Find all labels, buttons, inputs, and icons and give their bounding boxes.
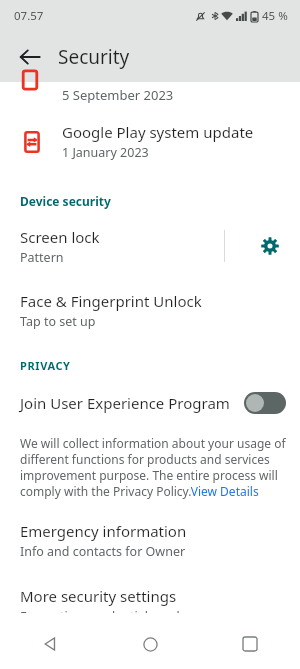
button[interactable]: Emergency information: [0, 517, 300, 566]
staticText: 45 %: [262, 8, 288, 24]
button[interactable]: Face & Fingerprint Unlock: [0, 287, 300, 336]
staticText: 1 January 2023: [62, 144, 149, 161]
staticText: 07.57: [14, 8, 44, 24]
button[interactable]: Home: [100, 619, 200, 669]
staticText: Emergency information: [20, 521, 187, 541]
button[interactable]: Join User Experience Program toggle: [244, 392, 286, 414]
staticText: Device security: [20, 193, 111, 209]
button[interactable]: Back: [0, 619, 100, 669]
button[interactable]: Recent apps: [200, 619, 300, 669]
button[interactable]: Screen lock settings: [248, 224, 292, 268]
staticText: Tap to set up: [20, 313, 96, 330]
staticText: We will collect information about your u…: [20, 435, 286, 499]
staticText: Info and contacts for Owner: [20, 543, 186, 560]
button[interactable]: Back: [10, 37, 50, 77]
staticText: 5 September 2023: [62, 86, 174, 104]
button[interactable]: More security settings: [0, 582, 300, 619]
button[interactable]: Join User Experience Program: [0, 383, 300, 423]
button[interactable]: Screen lock: [0, 219, 224, 273]
staticText: Google Play system update: [62, 122, 254, 142]
button[interactable]: 5 September 2023: [0, 82, 300, 108]
staticText: Pattern: [20, 249, 64, 266]
staticText: Encryption, credentials and more: [20, 608, 215, 613]
staticText: Security: [58, 44, 130, 70]
staticText: PRIVACY: [20, 358, 71, 373]
staticText: Join User Experience Program: [20, 393, 230, 413]
staticText: Screen lock: [20, 227, 100, 247]
staticText: Face & Fingerprint Unlock: [20, 291, 202, 311]
staticText: More security settings: [20, 586, 177, 606]
button[interactable]: Google Play system update: [0, 108, 300, 167]
